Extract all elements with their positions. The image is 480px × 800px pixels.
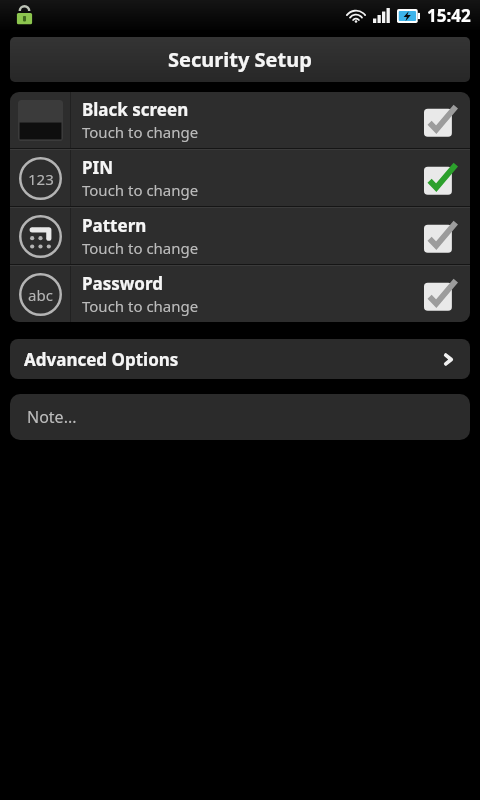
staticText: Touch to change bbox=[82, 180, 199, 200]
staticText: Touch to change bbox=[82, 238, 199, 258]
button[interactable]: Black screen bbox=[10, 92, 470, 148]
staticText: Advanced Options bbox=[24, 348, 179, 371]
staticText: Touch to change bbox=[82, 296, 199, 316]
staticText: abc bbox=[28, 285, 53, 305]
button[interactable]: 123 bbox=[10, 150, 470, 206]
button[interactable]: Advanced Options bbox=[10, 339, 470, 379]
staticText: Black screen bbox=[82, 98, 189, 121]
staticText: Password bbox=[82, 272, 163, 295]
staticText: 123 bbox=[28, 169, 54, 189]
other: Secure bbox=[15, 5, 34, 26]
staticText: Touch to change bbox=[82, 122, 199, 142]
button[interactable]: Note... bbox=[10, 394, 470, 440]
staticText: Security Setup bbox=[168, 46, 312, 73]
button[interactable]: Pattern bbox=[10, 208, 470, 264]
staticText: PIN bbox=[82, 156, 113, 179]
staticText: Pattern bbox=[82, 214, 147, 237]
staticText: 15:42 bbox=[427, 4, 471, 27]
staticText: Note... bbox=[27, 406, 77, 428]
button[interactable]: abc bbox=[10, 266, 470, 322]
